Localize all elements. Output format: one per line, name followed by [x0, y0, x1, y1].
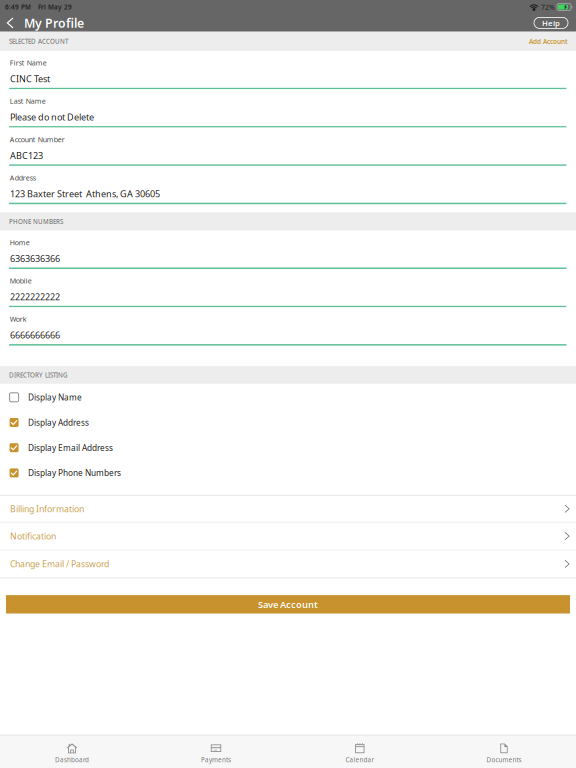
- staticText: Billing Information: [10, 503, 84, 515]
- button[interactable]: Help: [534, 17, 568, 28]
- staticText: PHONE NUMBERS: [9, 217, 63, 226]
- staticText: First Name: [10, 58, 47, 68]
- staticText: Help: [542, 18, 560, 28]
- button[interactable]: Documents: [432, 735, 576, 768]
- button[interactable]: Billing Information: [0, 495, 576, 523]
- staticText: Documents: [486, 756, 521, 764]
- button[interactable]: Add Account: [529, 34, 576, 48]
- staticText: 123 Baxter Street Athens, GA 30605: [10, 187, 160, 200]
- staticText: 6363636366: [10, 252, 60, 265]
- staticText: Add Account: [529, 37, 568, 46]
- staticText: Display Name: [28, 392, 82, 403]
- staticText: CINC Test: [10, 73, 50, 85]
- staticText: Notification: [10, 530, 56, 542]
- staticText: Fri May 29: [38, 3, 72, 11]
- button[interactable]: Display Address: [0, 409, 576, 434]
- button[interactable]: Display Phone Numbers: [0, 459, 576, 485]
- staticText: 72%: [541, 2, 555, 12]
- staticText: 2222222222: [10, 291, 60, 303]
- staticText: 6:49 PM: [5, 3, 31, 11]
- staticText: DIRECTORY LISTING: [9, 371, 68, 379]
- staticText: Mobile: [10, 276, 32, 286]
- staticText: Account Number: [10, 135, 65, 144]
- staticText: SELECTED ACCOUNT: [9, 37, 68, 46]
- button[interactable]: Calendar: [288, 735, 432, 768]
- staticText: Change Email / Password: [10, 558, 109, 570]
- staticText: Calendar: [345, 756, 374, 764]
- staticText: Work: [10, 314, 27, 324]
- staticText: Display Address: [28, 417, 89, 428]
- staticText: Address: [10, 173, 36, 182]
- button[interactable]: Notification: [0, 523, 576, 550]
- staticText: ABC123: [10, 149, 43, 161]
- staticText: Save Account: [258, 598, 318, 611]
- button[interactable]: Payments: [144, 735, 288, 768]
- staticText: Home: [10, 238, 30, 247]
- staticText: Please do not Delete: [10, 111, 94, 123]
- staticText: Display Email Address: [28, 442, 113, 453]
- button[interactable]: Display Name: [0, 384, 576, 409]
- button[interactable]: My Profile: [0, 14, 90, 32]
- staticText: Display Phone Numbers: [28, 467, 121, 479]
- staticText: Dashboard: [55, 756, 89, 764]
- staticText: Payments: [201, 756, 231, 764]
- button[interactable]: Dashboard: [0, 735, 144, 768]
- button[interactable]: Display Email Address: [0, 434, 576, 459]
- staticText: My Profile: [24, 14, 84, 31]
- staticText: 6666666666: [10, 329, 60, 341]
- button[interactable]: Change Email / Password: [0, 550, 576, 578]
- button[interactable]: Save Account: [6, 595, 570, 613]
- staticText: Last Name: [10, 96, 46, 106]
